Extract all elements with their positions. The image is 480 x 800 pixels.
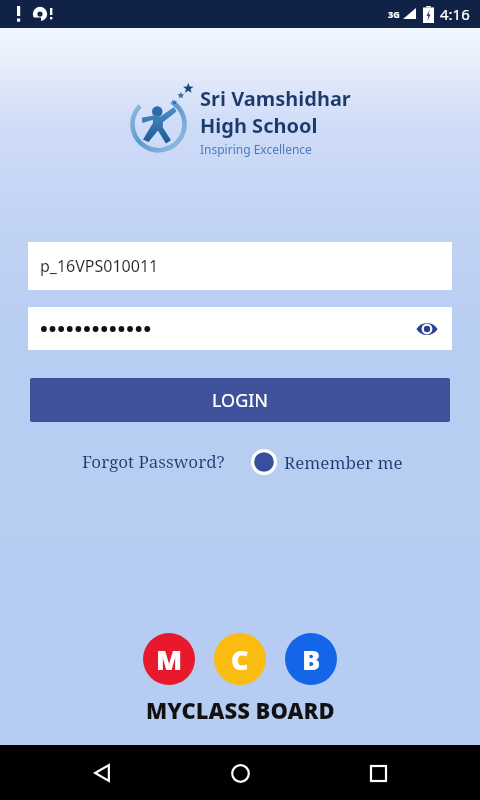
staticText: Sri Vamshidhar	[200, 85, 351, 112]
button[interactable]: Back	[80, 751, 124, 795]
button[interactable]: Forgot Password?	[78, 446, 229, 477]
button[interactable]: Show password	[28, 307, 452, 350]
staticText: C	[231, 641, 249, 678]
staticText: Inspiring Excellence	[200, 141, 312, 157]
staticText: M	[156, 641, 183, 678]
button[interactable]: p_16VPS010011	[28, 242, 452, 290]
staticText: B	[302, 641, 321, 678]
staticText: 4:16	[440, 4, 470, 24]
staticText: LOGIN	[212, 388, 269, 413]
button[interactable]: Remember me	[251, 447, 403, 477]
button[interactable]: Recent apps	[356, 751, 400, 795]
staticText: High School	[200, 112, 318, 139]
staticText: MYCLASS BOARD	[146, 695, 335, 725]
staticText: 3G	[388, 8, 400, 20]
staticText: p_16VPS010011	[40, 255, 159, 277]
staticText: Forgot Password?	[82, 450, 225, 473]
button[interactable]: LOGIN	[30, 378, 450, 422]
button[interactable]: Home	[218, 751, 262, 795]
staticText: Remember me	[284, 451, 403, 474]
button[interactable]: Show password	[412, 314, 442, 344]
